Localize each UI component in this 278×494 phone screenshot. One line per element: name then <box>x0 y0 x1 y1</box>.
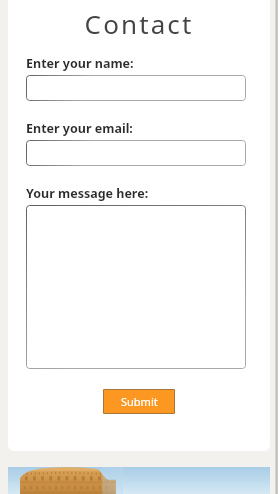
staticText: Submit <box>121 394 158 409</box>
staticText: Your message here: <box>26 185 149 202</box>
button[interactable]: Submit <box>103 389 175 414</box>
staticText: Enter your email: <box>26 120 133 137</box>
button[interactable]: Your message here <box>26 205 246 369</box>
staticText: Contact <box>29 6 249 41</box>
button[interactable]: Enter your email <box>26 140 246 166</box>
button[interactable]: Enter your name <box>26 75 246 101</box>
staticText: Enter your name: <box>26 55 134 72</box>
